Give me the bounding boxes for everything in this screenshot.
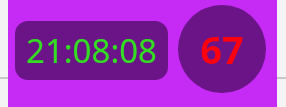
button[interactable]: Heart rate 67 [178, 5, 266, 93]
staticText: 21:08:08 [26, 28, 157, 73]
button[interactable]: 21:08:08 [15, 21, 168, 80]
staticText: 67 [200, 23, 244, 75]
